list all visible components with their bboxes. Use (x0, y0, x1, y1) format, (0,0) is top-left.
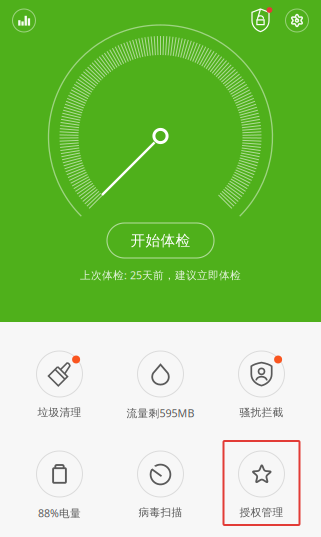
button[interactable]: 88%电量 (9, 422, 110, 522)
staticText: 授权管理 (239, 506, 283, 519)
staticText: 垃圾清理 (37, 406, 81, 419)
button[interactable]: 骚扰拦截 (211, 322, 312, 422)
staticText: 骚扰拦截 (239, 406, 283, 419)
button[interactable]: 流量剩595MB (110, 322, 211, 422)
button[interactable]: 设置 (273, 0, 321, 41)
staticText: 病毒扫描 (138, 506, 182, 519)
button[interactable]: 开始体检 (107, 223, 214, 258)
button[interactable]: 垃圾清理 (9, 322, 110, 422)
button[interactable]: 安全防护 (225, 0, 273, 41)
staticText: 流量剩595MB (126, 406, 194, 420)
button[interactable]: 统计 (0, 0, 48, 41)
staticText: 上次体检: 25天前，建议立即体检 (80, 268, 241, 282)
staticText: 开始体检 (130, 231, 190, 249)
button[interactable]: 授权管理 (211, 422, 312, 522)
staticText: 88%电量 (38, 506, 81, 520)
button[interactable]: 病毒扫描 (110, 422, 211, 522)
